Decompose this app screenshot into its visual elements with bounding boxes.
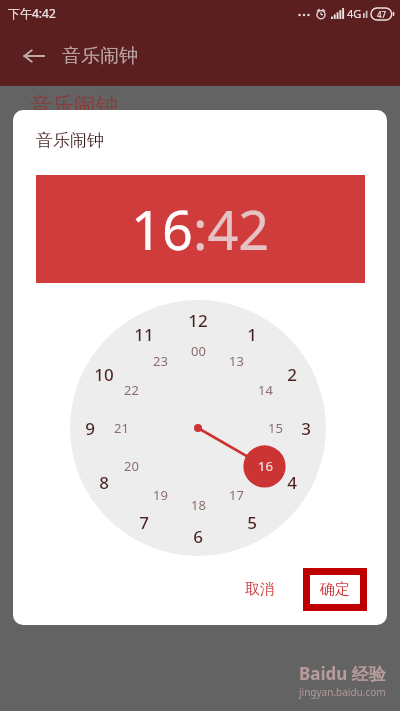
staticText: jingyan.baidu.com xyxy=(299,685,386,699)
staticText: 音乐闹钟 xyxy=(30,92,118,120)
staticText: 22 xyxy=(124,381,139,399)
staticText: 确定 xyxy=(320,580,350,599)
button[interactable]: 确定 xyxy=(303,568,367,611)
button[interactable]: Back xyxy=(12,34,56,78)
staticText: 7 xyxy=(139,511,149,533)
staticText: 12 xyxy=(188,309,208,331)
staticText: :42 xyxy=(193,192,270,266)
staticText: 16 xyxy=(258,457,273,475)
staticText: 1 xyxy=(247,323,257,345)
staticText: 9 xyxy=(85,417,95,439)
staticText: 14 xyxy=(258,381,273,399)
staticText: 3 xyxy=(301,417,311,439)
staticText: 18 xyxy=(191,496,206,514)
staticText: 15 xyxy=(268,419,283,437)
staticText: 2 xyxy=(287,363,297,385)
staticText: 8 xyxy=(99,471,109,493)
button[interactable]: 16 xyxy=(36,175,365,283)
staticText: 6 xyxy=(193,525,203,547)
staticText: 23 xyxy=(153,352,168,370)
staticText: 20 xyxy=(124,457,139,475)
staticText: 11 xyxy=(134,323,154,345)
staticText: 4G xyxy=(347,6,362,21)
staticText: 4 xyxy=(287,471,297,493)
staticText: 47 xyxy=(377,9,387,20)
staticText: 00 xyxy=(191,342,206,360)
button[interactable]: 取消 xyxy=(233,572,287,607)
staticText: 5 xyxy=(247,511,257,533)
staticText: 13 xyxy=(229,352,244,370)
staticText: 下午4:42 xyxy=(8,5,56,21)
staticText: 16 xyxy=(131,192,193,266)
staticText: 音乐闹钟 xyxy=(36,130,104,151)
staticText: 19 xyxy=(153,486,168,504)
staticText: 10 xyxy=(94,363,114,385)
staticText: 21 xyxy=(114,419,129,437)
staticText: Baidu 经验 xyxy=(299,662,386,685)
staticText: 17 xyxy=(229,486,244,504)
staticText: 音乐闹钟 xyxy=(62,44,138,68)
staticText: 取消 xyxy=(245,580,275,599)
